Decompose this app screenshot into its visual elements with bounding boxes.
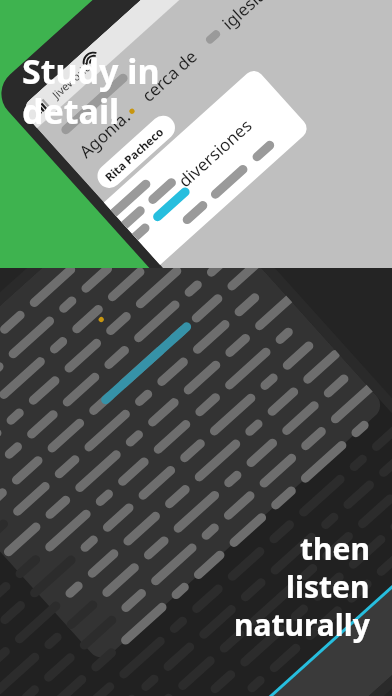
button[interactable]: Jiveworld promo bbox=[0, 0, 392, 696]
